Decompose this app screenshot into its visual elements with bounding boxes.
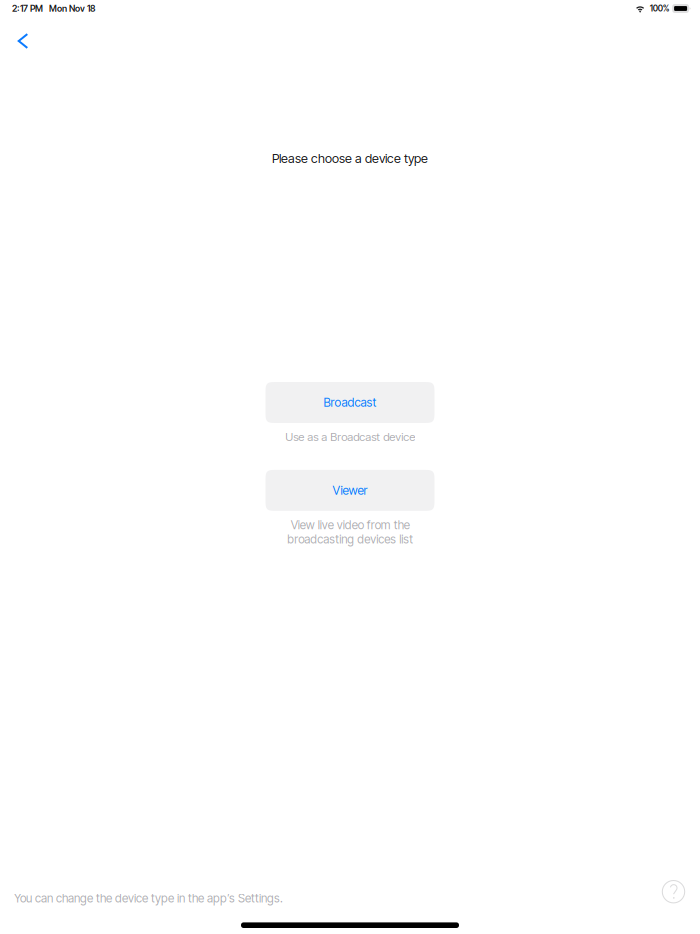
staticText: Mon Nov 18 [49,3,95,14]
staticText: View live video from the broadcasting de… [287,518,413,546]
staticText: 2:17 PM [12,3,43,14]
button[interactable]: Back [5,23,41,59]
staticText: Use as a Broadcast device [285,430,415,444]
staticText: 100% [650,3,670,14]
staticText: Viewer [332,483,367,498]
button[interactable]: Broadcast [265,382,434,423]
staticText: You can change the device type in the ap… [14,891,283,905]
button[interactable]: Help [662,880,685,903]
button[interactable]: Viewer [265,470,434,511]
staticText: Broadcast [323,395,376,410]
staticText: Please choose a device type [272,151,428,166]
